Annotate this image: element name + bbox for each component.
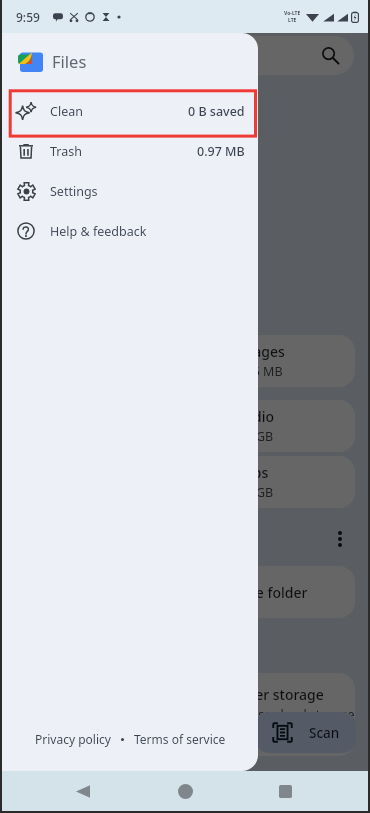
button[interactable]: Privacy policy [35,731,111,747]
staticText: LTE [288,17,297,24]
button[interactable]: Safe folder [14,566,355,618]
button[interactable]: Trash [2,131,258,171]
staticText: 0.97 MB [197,143,245,160]
staticText: Help & feedback [50,223,147,240]
staticText: ther storage [241,685,324,704]
staticText: 41.5 MB [235,363,283,380]
other: Search [321,46,340,65]
staticText: Apps [235,463,269,482]
button[interactable]: Images [14,335,355,387]
button[interactable]: Recent apps [262,771,308,811]
button[interactable]: Scan [255,712,356,753]
staticText: 0 B saved [188,103,245,120]
button[interactable]: Help & feedback [2,211,258,251]
staticText: Files [52,50,87,72]
staticText: 9:59 [16,9,40,25]
staticText: 1.2 GB [235,428,274,445]
button[interactable]: ther storage [14,673,355,756]
staticText: Audio [235,407,274,426]
button[interactable]: Terms of service [134,731,226,747]
staticText: Clean [50,103,83,120]
button[interactable]: Search [14,36,354,75]
button[interactable]: Audio [14,400,355,452]
button[interactable]: Apps [14,456,355,508]
button[interactable]: Back [60,771,106,811]
staticText: Safe folder [235,583,308,602]
button[interactable]: Home [162,771,208,811]
staticText: Images [235,342,285,361]
button[interactable]: Clean [2,91,258,131]
staticText: Vo-LTE [284,10,301,17]
staticText: Trash [50,143,82,160]
other: More options [338,531,342,547]
staticText: owse cloud storage [241,706,355,723]
staticText: 3.6 GB [235,484,274,501]
staticText: Settings [50,183,98,200]
staticText: Scan [309,724,340,742]
button[interactable]: Settings [2,171,258,211]
